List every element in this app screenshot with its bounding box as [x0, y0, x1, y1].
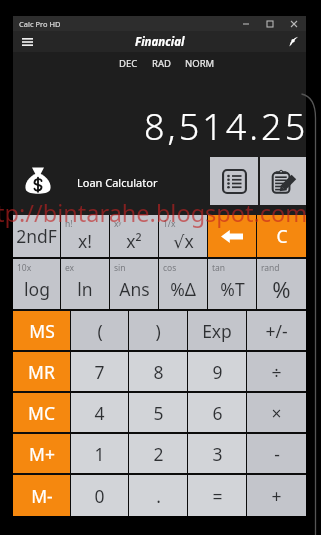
staticText: Exp: [202, 319, 232, 343]
button[interactable]: 7: [71, 352, 128, 391]
staticText: n!: [65, 218, 73, 230]
staticText: Ans: [119, 277, 150, 301]
staticText: -: [274, 442, 280, 466]
button[interactable]: x!: [61, 215, 109, 257]
button[interactable]: .: [129, 475, 187, 516]
staticText: 6: [212, 401, 223, 425]
staticText: Loan Calculator: [77, 175, 158, 190]
other: Backspace: [221, 230, 243, 243]
staticText: cos: [163, 262, 177, 274]
button[interactable]: RAD: [152, 57, 171, 70]
button[interactable]: 4: [71, 393, 128, 432]
staticText: 8,514.25: [144, 102, 309, 151]
button[interactable]: %: [257, 259, 306, 309]
staticText: %Δ: [170, 277, 196, 301]
staticText: M+: [29, 442, 55, 466]
button[interactable]: =: [188, 475, 246, 516]
staticText: MS: [29, 319, 55, 343]
button[interactable]: Loan Calculator: [22, 164, 54, 196]
button[interactable]: MS: [13, 311, 70, 350]
staticText: (: [97, 319, 103, 343]
button[interactable]: 0: [71, 475, 128, 516]
staticText: C: [276, 224, 288, 248]
staticText: 8: [153, 360, 164, 384]
staticText: 3: [212, 442, 223, 466]
staticText: +/-: [265, 319, 288, 343]
staticText: %: [272, 274, 291, 304]
button[interactable]: 9: [188, 352, 246, 391]
button[interactable]: Edit: [280, 31, 306, 52]
staticText: 7: [94, 360, 105, 384]
staticText: MC: [28, 401, 55, 425]
staticText: 1/x: [163, 218, 176, 230]
staticText: x!: [78, 229, 92, 253]
staticText: ×: [271, 401, 282, 425]
button[interactable]: M+: [13, 434, 70, 473]
staticText: ): [155, 319, 161, 343]
button[interactable]: M-: [13, 475, 70, 516]
staticText: MR: [28, 360, 55, 384]
button[interactable]: Close: [282, 16, 306, 31]
staticText: sin: [114, 262, 126, 274]
button[interactable]: Menu: [13, 31, 41, 52]
button[interactable]: History list: [210, 157, 258, 205]
button[interactable]: C: [257, 215, 306, 257]
button[interactable]: 3: [188, 434, 246, 473]
staticText: .: [156, 484, 161, 508]
button[interactable]: √x: [159, 215, 207, 257]
button[interactable]: log: [13, 259, 60, 309]
staticText: tp://bintarahe.blogspot.com: [0, 197, 308, 229]
staticText: NORM: [185, 57, 215, 70]
staticText: ÷: [271, 360, 282, 384]
staticText: 2ndF: [16, 224, 57, 248]
staticText: 1: [94, 442, 105, 466]
button[interactable]: 2: [129, 434, 187, 473]
button[interactable]: Ans: [110, 259, 158, 309]
button[interactable]: ×: [247, 393, 306, 432]
staticText: x²: [126, 229, 142, 253]
staticText: RAD: [152, 57, 171, 70]
staticText: 9: [212, 360, 223, 384]
staticText: =: [212, 484, 223, 508]
staticText: 5: [153, 401, 164, 425]
staticText: Calc Pro HD: [19, 19, 61, 29]
staticText: 4: [94, 401, 105, 425]
button[interactable]: 8: [129, 352, 187, 391]
button[interactable]: ln: [61, 259, 109, 309]
staticText: %T: [220, 277, 245, 301]
staticText: +: [271, 484, 282, 508]
button[interactable]: 5: [129, 393, 187, 432]
staticText: 2: [153, 442, 164, 466]
button[interactable]: Notes: [260, 157, 306, 205]
button[interactable]: +/-: [247, 311, 306, 350]
button[interactable]: 6: [188, 393, 246, 432]
button[interactable]: 1: [71, 434, 128, 473]
staticText: Financial: [135, 34, 185, 50]
staticText: 0: [94, 484, 105, 508]
staticText: log: [24, 277, 50, 301]
button[interactable]: %Δ: [159, 259, 207, 309]
staticText: rand: [261, 262, 280, 274]
staticText: DEC: [119, 57, 138, 70]
button[interactable]: +: [247, 475, 306, 516]
button[interactable]: DEC: [119, 57, 138, 70]
staticText: M-: [31, 484, 53, 508]
button[interactable]: Exp: [188, 311, 246, 350]
staticText: xʸ: [114, 218, 122, 230]
button[interactable]: Backspace: [208, 215, 256, 257]
button[interactable]: ): [129, 311, 187, 350]
button[interactable]: %T: [208, 259, 256, 309]
button[interactable]: 2ndF: [13, 215, 60, 257]
button[interactable]: (: [71, 311, 128, 350]
button[interactable]: x²: [110, 215, 158, 257]
button[interactable]: MR: [13, 352, 70, 391]
button[interactable]: Minimize: [234, 16, 258, 31]
staticText: √x: [173, 229, 194, 253]
button[interactable]: NORM: [185, 57, 215, 70]
button[interactable]: MC: [13, 393, 70, 432]
button[interactable]: ÷: [247, 352, 306, 391]
staticText: 10x: [17, 262, 32, 274]
button[interactable]: -: [247, 434, 306, 473]
button[interactable]: Maximize: [258, 16, 282, 31]
staticText: tan: [212, 262, 226, 274]
